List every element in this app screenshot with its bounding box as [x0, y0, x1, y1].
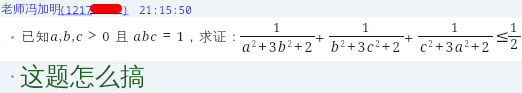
- staticText: 1: [451, 18, 460, 36]
- staticText: c2+3a2+2: [420, 34, 491, 57]
- staticText: ≤: [495, 26, 510, 46]
- staticText: (1217: [59, 2, 92, 17]
- staticText: 1: [362, 18, 371, 36]
- staticText: a2+3b2+2: [242, 34, 314, 57]
- staticText: +: [404, 26, 414, 49]
- staticText: 老师冯加明: [1, 1, 61, 16]
- staticText: ): [122, 2, 129, 17]
- staticText: 1: [510, 18, 519, 36]
- staticText: 21:15:50: [139, 2, 192, 17]
- other: Redacted account number: [90, 4, 122, 13]
- staticText: 这题怎么搞: [20, 61, 145, 92]
- button[interactable]: [0, 0, 195, 16]
- staticText: 已知a,b,c > 0 且 abc = 1，求证：: [22, 24, 242, 46]
- staticText: b2+3c2+2: [331, 34, 402, 57]
- staticText: +: [315, 26, 325, 49]
- staticText: 1: [273, 18, 282, 36]
- staticText: 2: [510, 34, 520, 53]
